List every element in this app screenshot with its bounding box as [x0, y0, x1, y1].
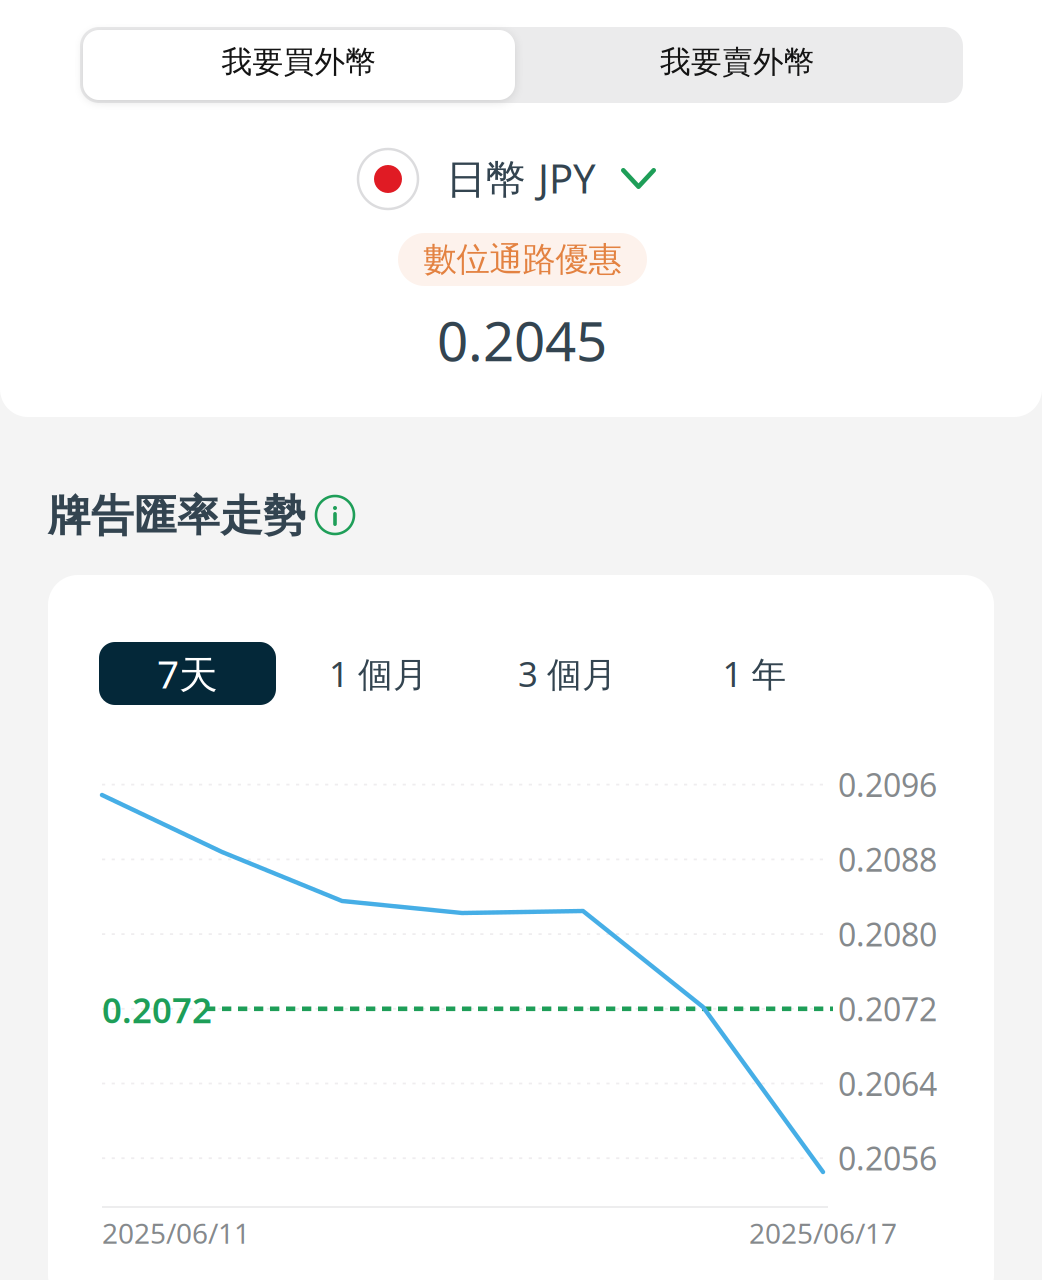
staticText: 7天: [157, 648, 218, 699]
staticText: 牌告匯率走勢: [48, 490, 306, 542]
staticText: 0.2045: [437, 304, 607, 376]
button[interactable]: 1 個月: [291, 642, 466, 705]
button[interactable]: 我要買外幣: [83, 30, 515, 100]
button[interactable]: 7天: [99, 642, 276, 705]
button[interactable]: 3 個月: [480, 642, 655, 705]
staticText: 數位通路優惠: [423, 239, 621, 280]
button[interactable]: 1 年: [667, 642, 842, 705]
staticText: 0.2072: [102, 987, 212, 1033]
staticText: 我要買外幣: [221, 43, 376, 81]
staticText: 0.2064: [838, 1062, 937, 1105]
button[interactable]: 日幣 JPY: [358, 149, 658, 209]
staticText: 0.2056: [838, 1137, 937, 1179]
staticText: 2025/06/17: [749, 1214, 897, 1252]
staticText: 3 個月: [518, 650, 617, 696]
staticText: 日幣 JPY: [446, 151, 596, 204]
button[interactable]: 我要賣外幣: [515, 30, 960, 100]
staticText: 0.2088: [838, 838, 937, 881]
staticText: 1 個月: [329, 650, 428, 696]
staticText: 1 年: [722, 650, 786, 696]
staticText: 0.2072: [838, 988, 937, 1030]
staticText: 2025/06/11: [102, 1214, 250, 1252]
staticText: 0.2080: [838, 913, 937, 955]
staticText: 我要賣外幣: [660, 43, 815, 81]
staticText: 0.2096: [838, 763, 937, 806]
button[interactable]: About exchange rate trend: [316, 496, 354, 534]
